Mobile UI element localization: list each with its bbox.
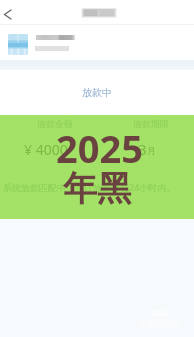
staticText: 3 xyxy=(138,139,147,159)
staticText: 借款金额 xyxy=(37,118,73,129)
staticText: 借款期限 xyxy=(133,118,169,129)
staticText: 放款中 xyxy=(82,86,112,99)
staticText: 系统放款匹配中，预计放款将在24小时内。 xyxy=(3,181,176,193)
staticText: 2025 xyxy=(56,122,143,174)
button[interactable] xyxy=(0,25,194,60)
button[interactable]: Back xyxy=(0,2,20,22)
staticText: 月 xyxy=(147,145,156,156)
staticText: 年黑 xyxy=(63,167,131,210)
staticText: ¥ 4000 xyxy=(24,140,68,159)
